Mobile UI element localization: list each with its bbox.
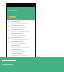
button[interactable] [7, 28, 35, 32]
button[interactable] [7, 20, 35, 24]
button[interactable] [7, 7, 35, 20]
button[interactable] [7, 40, 35, 44]
button[interactable] [7, 52, 35, 56]
button[interactable] [7, 44, 35, 48]
button[interactable] [7, 24, 35, 28]
button[interactable] [7, 48, 35, 52]
button[interactable] [7, 36, 35, 40]
button[interactable] [7, 32, 35, 36]
